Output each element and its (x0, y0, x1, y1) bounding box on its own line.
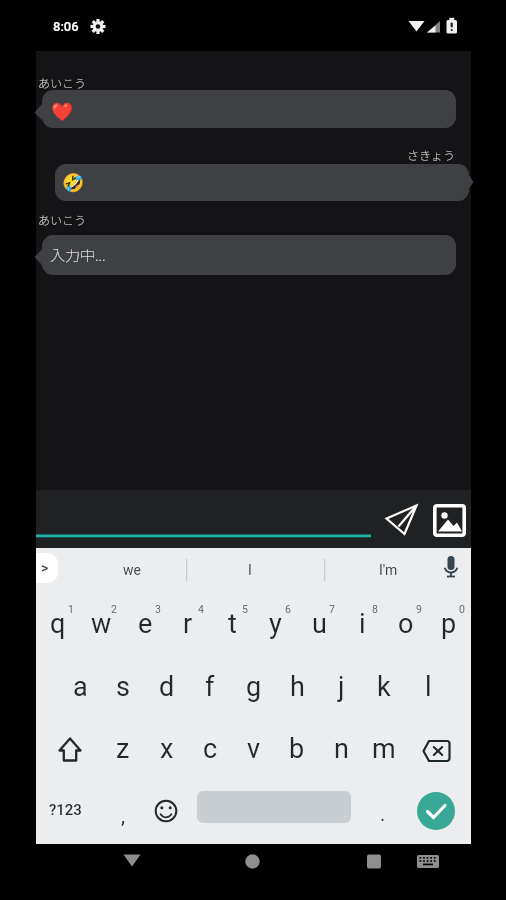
staticText: l (425, 671, 432, 703)
staticText: v (247, 733, 261, 765)
button[interactable]: y (215, 594, 335, 654)
button[interactable]: v (194, 719, 314, 779)
staticText: a (73, 671, 88, 703)
staticText: I'm (379, 562, 398, 578)
staticText: 6 (285, 603, 291, 615)
staticText: 7 (329, 603, 335, 615)
button[interactable]: l (368, 657, 488, 717)
staticText: > (41, 560, 49, 576)
button[interactable]: t (172, 594, 292, 654)
staticText: s (116, 671, 130, 703)
button[interactable]: u (259, 594, 379, 654)
button[interactable]: q (0, 594, 118, 654)
button[interactable]: w (41, 594, 161, 654)
staticText: m (372, 733, 396, 765)
button[interactable]: z (63, 719, 183, 779)
staticText: t (228, 608, 237, 640)
staticText: o (398, 608, 414, 640)
staticText: q (50, 608, 66, 640)
staticText: w (91, 608, 112, 640)
staticText: r (183, 608, 193, 640)
button[interactable]: ?123 (5, 780, 125, 840)
button[interactable] (417, 792, 455, 830)
button[interactable]: b (237, 719, 357, 779)
staticText: j (338, 671, 345, 703)
button[interactable]: a (20, 657, 140, 717)
staticText: we (123, 562, 141, 578)
button[interactable]: , (63, 785, 183, 845)
staticText: i (359, 608, 366, 640)
button[interactable] (380, 502, 424, 540)
staticText: f (205, 671, 215, 703)
staticText: x (160, 733, 174, 765)
staticText: n (334, 733, 349, 765)
staticText: c (203, 733, 218, 765)
button[interactable] (231, 846, 275, 876)
staticText: p (441, 608, 457, 640)
button[interactable]: j (281, 657, 401, 717)
button[interactable] (414, 738, 471, 764)
staticText: b (289, 733, 305, 765)
staticText: 9 (416, 603, 422, 615)
button[interactable] (352, 846, 396, 876)
staticText: u (312, 608, 327, 640)
staticText: 0 (459, 603, 465, 615)
staticText: ❤ (51, 101, 74, 122)
button[interactable] (433, 556, 469, 582)
button[interactable]: k (324, 657, 444, 717)
staticText: 1 (68, 603, 74, 615)
button[interactable]: x (107, 719, 227, 779)
staticText: y (269, 608, 282, 640)
button[interactable]: o (346, 594, 466, 654)
staticText: あいこう (38, 211, 87, 228)
staticText: ?123 (49, 801, 82, 819)
button[interactable]: d (107, 657, 227, 717)
button[interactable]: g (194, 657, 314, 717)
staticText: h (290, 671, 305, 703)
staticText: 5 (242, 603, 248, 615)
staticText: z (116, 733, 130, 765)
button[interactable]: c (150, 719, 270, 779)
button[interactable]: we (72, 540, 192, 600)
button[interactable]: r (128, 594, 248, 654)
staticText: I (248, 562, 252, 578)
button[interactable] (36, 553, 58, 583)
button[interactable] (430, 502, 470, 540)
staticText: k (377, 671, 391, 703)
button[interactable] (410, 846, 454, 876)
staticText: 3 (155, 603, 161, 615)
button[interactable]: m (324, 719, 444, 779)
staticText: g (246, 671, 262, 703)
button[interactable]: I'm (328, 540, 448, 600)
button[interactable]: i (302, 594, 422, 654)
staticText: 入力中... (50, 244, 106, 266)
button[interactable]: h (237, 657, 357, 717)
button[interactable]: s (63, 657, 183, 717)
staticText: e (138, 608, 153, 640)
button[interactable] (110, 846, 154, 876)
staticText: 8 (372, 603, 378, 615)
staticText: d (159, 671, 175, 703)
staticText: 🤣 (62, 172, 85, 193)
staticText: . (380, 802, 386, 825)
staticText: 4 (198, 603, 204, 615)
button[interactable]: n (281, 719, 401, 779)
button[interactable]: p (389, 594, 506, 654)
button[interactable] (148, 792, 184, 828)
staticText: 8:06 (53, 19, 79, 34)
button[interactable]: . (323, 783, 443, 843)
button[interactable]: f (150, 657, 270, 717)
button[interactable]: I (190, 540, 310, 600)
staticText: あいこう (38, 74, 87, 91)
button[interactable]: e (85, 594, 205, 654)
button[interactable] (36, 738, 96, 764)
staticText: , (121, 804, 125, 827)
staticText: 2 (111, 603, 117, 615)
staticText: さきょう (407, 146, 456, 163)
